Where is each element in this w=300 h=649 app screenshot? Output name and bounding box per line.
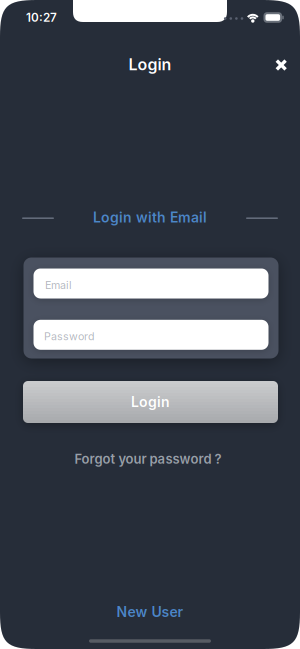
staticText: Email (45, 278, 72, 291)
button[interactable]: New User (116, 603, 183, 620)
button[interactable]: Email (33, 268, 268, 298)
button[interactable] (263, 47, 299, 83)
staticText: Login (128, 55, 171, 74)
staticText: Login (131, 393, 170, 410)
button[interactable]: Forgot your password ? (74, 451, 221, 467)
staticText: Password (44, 330, 95, 343)
staticText: Forgot your password ? (74, 451, 221, 467)
button[interactable]: Login (23, 381, 278, 423)
staticText: 10:27 (26, 10, 57, 25)
button[interactable]: Password (33, 320, 268, 350)
staticText: Login with Email (93, 209, 207, 226)
staticText: New User (116, 603, 183, 620)
